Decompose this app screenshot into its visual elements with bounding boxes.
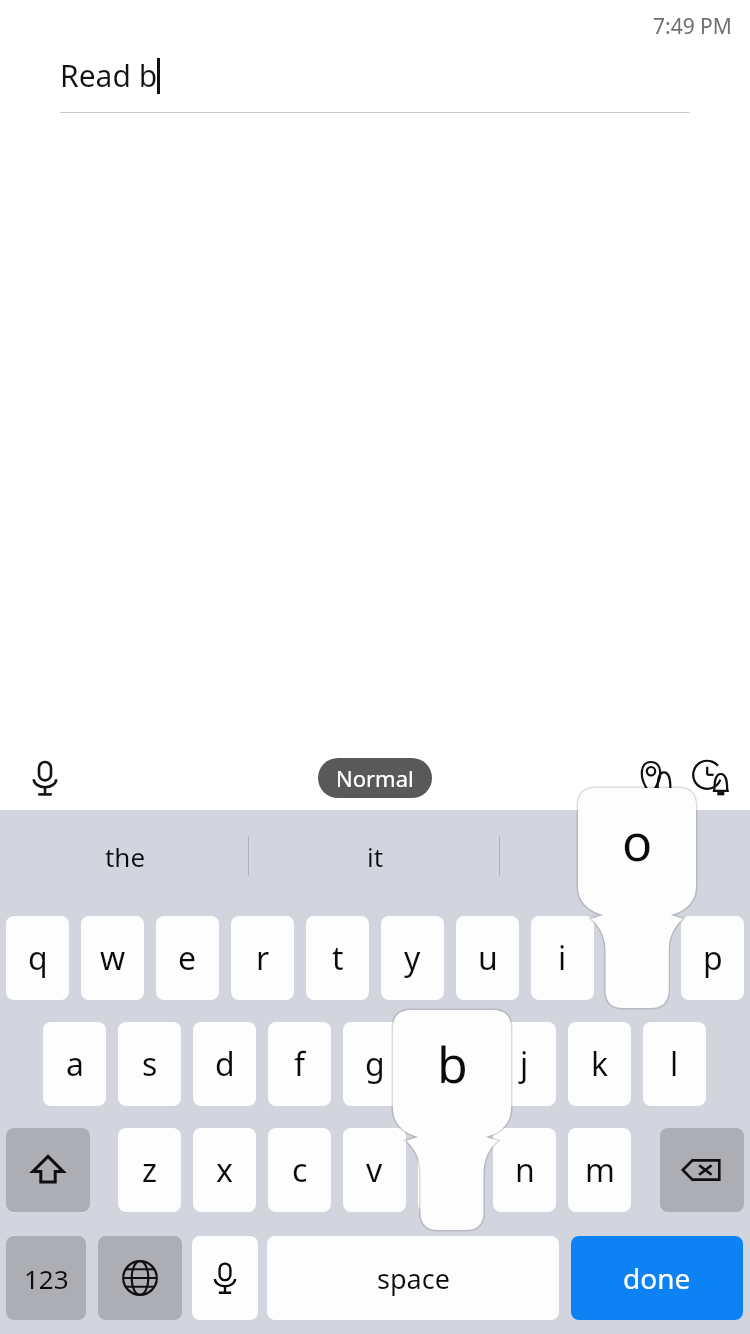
staticText: z xyxy=(142,1148,158,1192)
staticText: e xyxy=(178,936,197,980)
button[interactable]: Backspace xyxy=(660,1128,744,1212)
button[interactable]: j xyxy=(493,1022,556,1106)
button[interactable] xyxy=(606,916,669,1000)
button[interactable]: v xyxy=(343,1128,406,1212)
button[interactable]: Location reminder xyxy=(628,750,684,806)
button[interactable]: Normal xyxy=(318,758,432,798)
staticText: k xyxy=(591,1042,609,1086)
staticText: n xyxy=(515,1148,535,1192)
staticText: Normal xyxy=(336,763,414,793)
staticText: d xyxy=(215,1042,235,1086)
button[interactable]: 123 xyxy=(6,1236,86,1320)
staticText: v xyxy=(366,1148,383,1192)
button[interactable]: f xyxy=(268,1022,331,1106)
staticText: y xyxy=(404,936,421,980)
staticText: x xyxy=(216,1148,233,1192)
staticText: u xyxy=(478,936,498,980)
button[interactable]: y xyxy=(381,916,444,1000)
button[interactable]: w xyxy=(81,916,144,1000)
button[interactable]: x xyxy=(193,1128,256,1212)
button[interactable]: r xyxy=(231,916,294,1000)
button[interactable]: it xyxy=(250,839,500,874)
button[interactable]: Voice input xyxy=(16,749,74,807)
staticText: m xyxy=(585,1148,615,1192)
staticText: space xyxy=(377,1260,450,1297)
staticText: l xyxy=(670,1042,679,1086)
button[interactable]: z xyxy=(118,1128,181,1212)
staticText: g xyxy=(365,1042,385,1086)
button[interactable]: the xyxy=(0,839,250,874)
button[interactable]: g xyxy=(343,1022,406,1106)
staticText: s xyxy=(142,1042,158,1086)
button[interactable]: Voice typing xyxy=(192,1236,258,1320)
staticText: o xyxy=(622,808,653,876)
button[interactable]: n xyxy=(493,1128,556,1212)
button[interactable]: t xyxy=(306,916,369,1000)
staticText: i xyxy=(558,936,567,980)
button[interactable]: c xyxy=(268,1128,331,1212)
button[interactable]: h xyxy=(418,1022,481,1106)
staticText: r xyxy=(256,936,270,980)
button[interactable]: l xyxy=(643,1022,706,1106)
button[interactable] xyxy=(418,1128,481,1212)
button[interactable]: s xyxy=(118,1022,181,1106)
button[interactable]: m xyxy=(568,1128,631,1212)
button[interactable]: e xyxy=(156,916,219,1000)
button[interactable]: space xyxy=(267,1236,559,1320)
button[interactable]: Time reminder xyxy=(684,750,740,806)
staticText: w xyxy=(100,936,126,980)
staticText: done xyxy=(623,1259,691,1297)
button[interactable]: a xyxy=(43,1022,106,1106)
button[interactable]: d xyxy=(193,1022,256,1106)
button[interactable]: Change language xyxy=(98,1236,182,1320)
staticText: 7:49 PM xyxy=(653,12,732,41)
button[interactable]: Shift xyxy=(6,1128,90,1212)
button[interactable]: p xyxy=(681,916,744,1000)
staticText: q xyxy=(28,936,48,980)
button[interactable]: done xyxy=(571,1236,743,1320)
button[interactable]: i xyxy=(531,916,594,1000)
staticText: c xyxy=(292,1148,308,1192)
staticText: t xyxy=(332,936,344,980)
button[interactable]: q xyxy=(6,916,69,1000)
staticText: p xyxy=(703,936,723,980)
staticText: j xyxy=(520,1042,529,1086)
staticText: a xyxy=(66,1042,84,1086)
staticText: 123 xyxy=(24,1261,69,1296)
staticText: b xyxy=(437,1030,468,1098)
staticText: Read b xyxy=(60,55,158,96)
staticText: f xyxy=(294,1042,306,1086)
button[interactable]: u xyxy=(456,916,519,1000)
button[interactable]: k xyxy=(568,1022,631,1106)
staticText: h xyxy=(440,1042,460,1086)
